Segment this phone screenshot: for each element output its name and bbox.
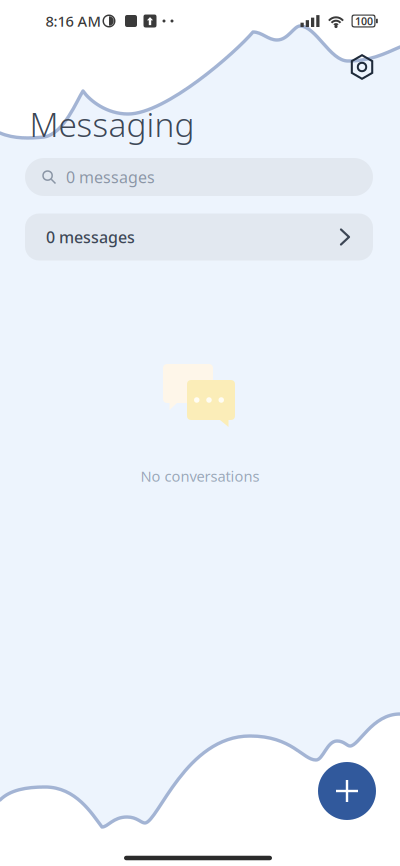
staticText: 8:16 AM [45, 11, 100, 31]
staticText: 100 [355, 14, 373, 28]
staticText: No conversations [140, 466, 259, 486]
button[interactable]: New message [318, 762, 376, 820]
button[interactable]: 0 messages [25, 213, 373, 260]
staticText: 0 messages [46, 226, 135, 248]
staticText: Messaging [29, 102, 194, 146]
button[interactable]: 0 messages [25, 158, 373, 196]
button[interactable]: Settings [349, 54, 375, 80]
staticText: 0 messages [66, 166, 155, 188]
